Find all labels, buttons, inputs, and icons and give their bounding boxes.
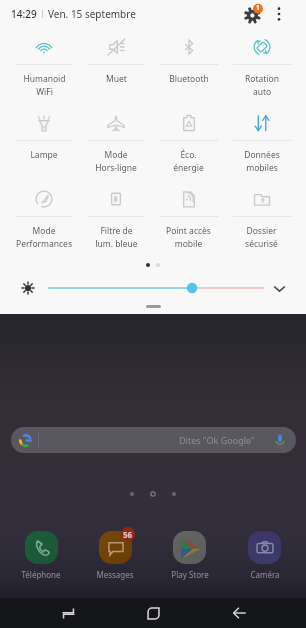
button[interactable]: Expand — [268, 277, 290, 299]
button[interactable]: More options — [270, 5, 288, 23]
staticText: 56 — [123, 529, 133, 540]
staticText: Mode Performances — [16, 225, 72, 250]
staticText: Point accès mobile — [166, 225, 211, 250]
button[interactable]: Données mobiles — [225, 104, 298, 180]
button[interactable]: Téléphone — [4, 527, 78, 580]
button[interactable]: Dossier sécurisé — [225, 180, 298, 256]
button[interactable]: Mode Hors-ligne — [80, 104, 152, 180]
button[interactable]: Humanoid WiFi — [8, 28, 80, 104]
staticText: Éco. énergie — [173, 149, 204, 174]
staticText: 14:29 — [11, 7, 37, 21]
button[interactable] — [48, 278, 264, 298]
staticText: Bluetooth — [169, 73, 209, 85]
staticText: Muet — [106, 73, 127, 85]
button[interactable]: Dites "Ok Google" — [11, 427, 296, 453]
staticText: Humanoid WiFi — [23, 73, 66, 98]
staticText: Caméra — [250, 569, 280, 580]
button[interactable]: Settings — [242, 2, 266, 26]
staticText: Rotation auto — [245, 73, 279, 98]
button[interactable]: Point accès mobile — [152, 180, 225, 256]
button[interactable] — [146, 305, 161, 308]
button[interactable]: Back — [217, 598, 261, 628]
button[interactable]: Brightness — [18, 278, 38, 298]
button[interactable]: Play Store — [152, 527, 227, 580]
button[interactable]: Caméra — [227, 527, 302, 580]
button[interactable]: Filtre de lum. bleue — [80, 180, 152, 256]
staticText: Dites "Ok Google" — [179, 434, 255, 446]
button[interactable]: Mode Performances — [8, 180, 80, 256]
staticText: Mode Hors-ligne — [95, 149, 137, 174]
staticText: 1 — [256, 3, 260, 12]
button[interactable]: Bluetooth — [152, 28, 225, 104]
staticText: Lampe — [30, 149, 58, 161]
staticText: Téléphone — [21, 569, 61, 580]
button[interactable]: Éco. énergie — [152, 104, 225, 180]
button[interactable]: Recent apps — [46, 598, 90, 628]
staticText: Données mobiles — [244, 149, 280, 174]
staticText: Play Store — [171, 569, 209, 580]
button[interactable]: Rotation auto — [225, 28, 298, 104]
button[interactable]: Lampe — [8, 104, 80, 180]
staticText: Dossier sécurisé — [245, 225, 278, 250]
staticText: Ven. 15 septembre — [48, 7, 136, 21]
button[interactable]: Home — [131, 598, 175, 628]
button[interactable]: Muet — [80, 28, 152, 104]
staticText: Messages — [96, 569, 134, 580]
staticText: Filtre de lum. bleue — [95, 225, 138, 250]
button[interactable]: 56 — [78, 527, 152, 580]
